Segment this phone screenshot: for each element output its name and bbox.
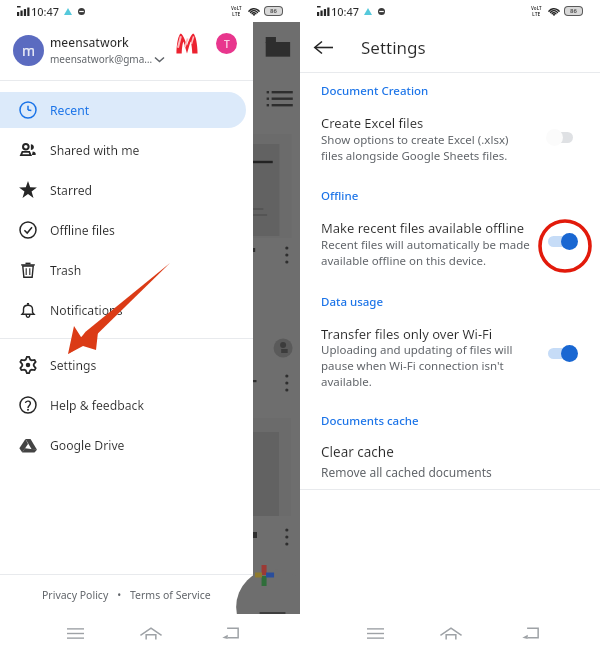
staticText: Transfer files only over Wi-Fi [321, 325, 493, 343]
button[interactable]: Recent apps [58, 616, 92, 650]
staticText: meensatwork [50, 34, 129, 50]
staticText: meensatwork@gma… [50, 52, 153, 66]
button[interactable]: Shared with me [0, 132, 246, 168]
staticText: Offline files [50, 222, 115, 239]
staticText: Settings [361, 36, 426, 59]
button[interactable] [546, 127, 578, 147]
staticText: Settings [50, 357, 97, 374]
staticText: Make recent files available offline [321, 219, 525, 237]
button[interactable]: Privacy Policy [42, 588, 109, 602]
staticText: • [109, 588, 130, 602]
staticText: Data usage [321, 294, 384, 310]
staticText: Create Excel files [321, 114, 424, 132]
button[interactable]: Back [513, 616, 547, 650]
staticText: Documents cache [321, 413, 419, 429]
button[interactable]: Home [434, 616, 468, 650]
staticText: Shared with me [50, 142, 140, 159]
button[interactable]: Google Drive [0, 427, 246, 463]
staticText: 86 [570, 7, 577, 15]
staticText: m [22, 41, 36, 60]
button[interactable]: Home [134, 616, 168, 650]
staticText: Notifications [50, 302, 123, 319]
button[interactable]: Help & feedback [0, 387, 246, 423]
staticText: 86 [270, 7, 277, 15]
button[interactable]: Recent [0, 92, 246, 128]
staticText: Google Drive [50, 437, 125, 454]
button[interactable]: Notifications [0, 292, 246, 328]
staticText: Recent files will automatically be made … [321, 237, 530, 269]
staticText: Document Creation [321, 83, 429, 99]
button[interactable]: Starred [0, 172, 246, 208]
staticText: Uploading and updating of files will pau… [321, 342, 513, 390]
button[interactable]: Trash [0, 252, 246, 288]
button[interactable]: Recent apps [358, 616, 392, 650]
button[interactable]: Terms of Service [130, 588, 211, 602]
staticText: Help & feedback [50, 397, 144, 414]
staticText: VoLT [531, 5, 542, 11]
staticText: LTE [532, 11, 541, 18]
staticText: Remove all cached documents [321, 464, 492, 480]
button[interactable] [546, 231, 578, 251]
staticText: LTE [232, 11, 241, 18]
staticText: T [224, 37, 230, 51]
staticText: 10:47 [31, 4, 60, 19]
button[interactable]: Clear cache [300, 439, 600, 490]
button[interactable]: Navigate back [300, 24, 346, 70]
button[interactable]: Back [213, 616, 247, 650]
staticText: Offline [321, 188, 359, 204]
button[interactable]: Offline files [0, 212, 246, 248]
staticText: VoLT [231, 5, 242, 11]
staticText: Recent [50, 102, 90, 119]
staticText: Clear cache [321, 443, 394, 461]
button[interactable]: m [0, 22, 253, 78]
staticText: Show options to create Excel (.xlsx) fil… [321, 132, 509, 164]
button[interactable]: Settings [0, 347, 246, 383]
staticText: 10:47 [331, 4, 360, 19]
button[interactable] [546, 343, 578, 363]
staticText: Starred [50, 182, 93, 199]
staticText: Trash [50, 262, 82, 279]
button[interactable]: Account T [216, 33, 237, 54]
